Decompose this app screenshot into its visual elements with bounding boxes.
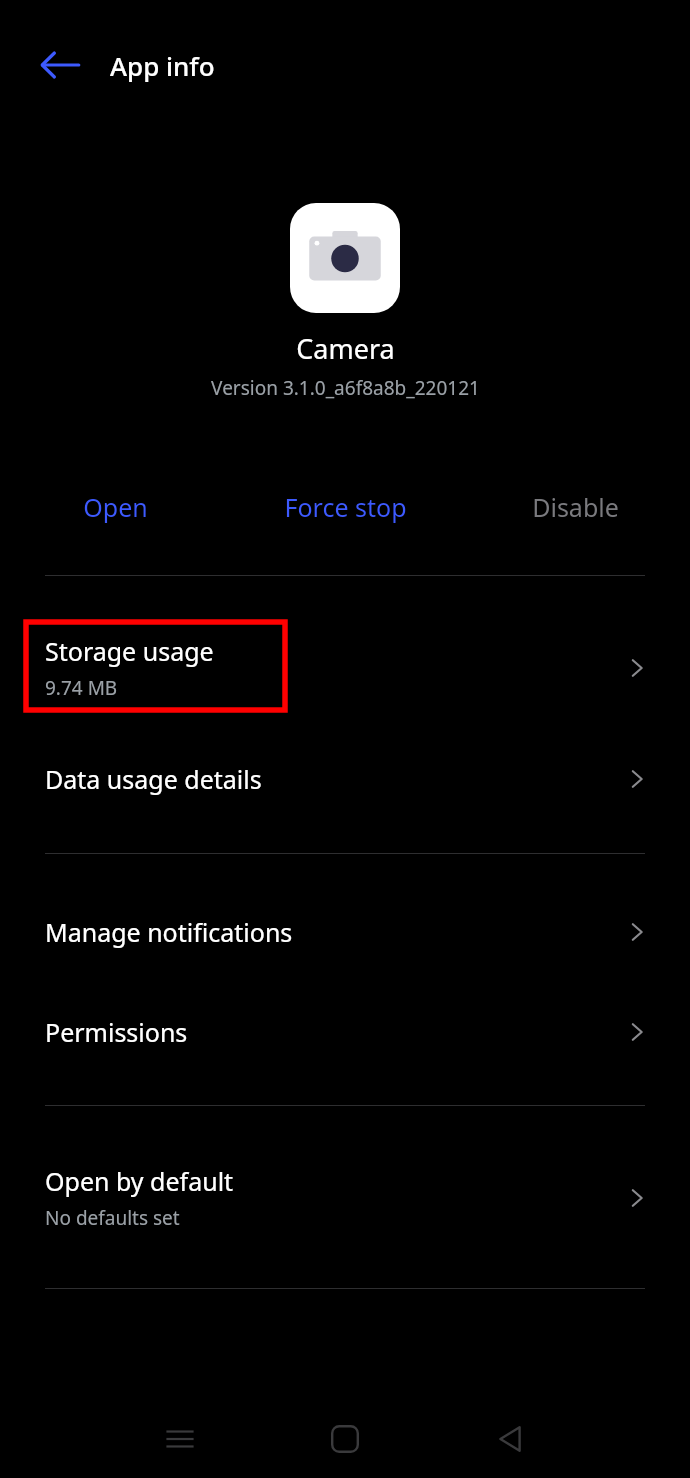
button[interactable]: Force stop (230, 472, 460, 542)
button[interactable]: Disable (460, 472, 690, 542)
staticText: Version 3.1.0_a6f8a8b_220121 (211, 375, 480, 401)
staticText: Data usage details (45, 762, 262, 796)
staticText: Open (83, 490, 148, 524)
staticText: Storage usage (45, 634, 214, 668)
button[interactable]: Storage usage (0, 620, 690, 715)
staticText: 9.74 MB (45, 675, 118, 701)
staticText: Permissions (45, 1015, 188, 1049)
button[interactable]: Back (29, 34, 91, 96)
staticText: Camera (296, 330, 395, 367)
staticText: Force stop (284, 490, 407, 524)
button[interactable]: Back (478, 1407, 542, 1471)
button[interactable]: Recent apps (148, 1407, 212, 1471)
staticText: No defaults set (45, 1205, 180, 1231)
button[interactable]: Manage notifications (0, 893, 690, 971)
staticText: Open by default (45, 1164, 234, 1198)
button[interactable]: Permissions (0, 993, 690, 1071)
staticText: Manage notifications (45, 915, 293, 949)
button[interactable]: Open (0, 472, 230, 542)
button[interactable]: Data usage details (0, 740, 690, 818)
button[interactable]: Open by default (0, 1150, 690, 1245)
button[interactable]: Home (313, 1407, 377, 1471)
staticText: Disable (532, 490, 619, 524)
staticText: App info (110, 48, 215, 83)
